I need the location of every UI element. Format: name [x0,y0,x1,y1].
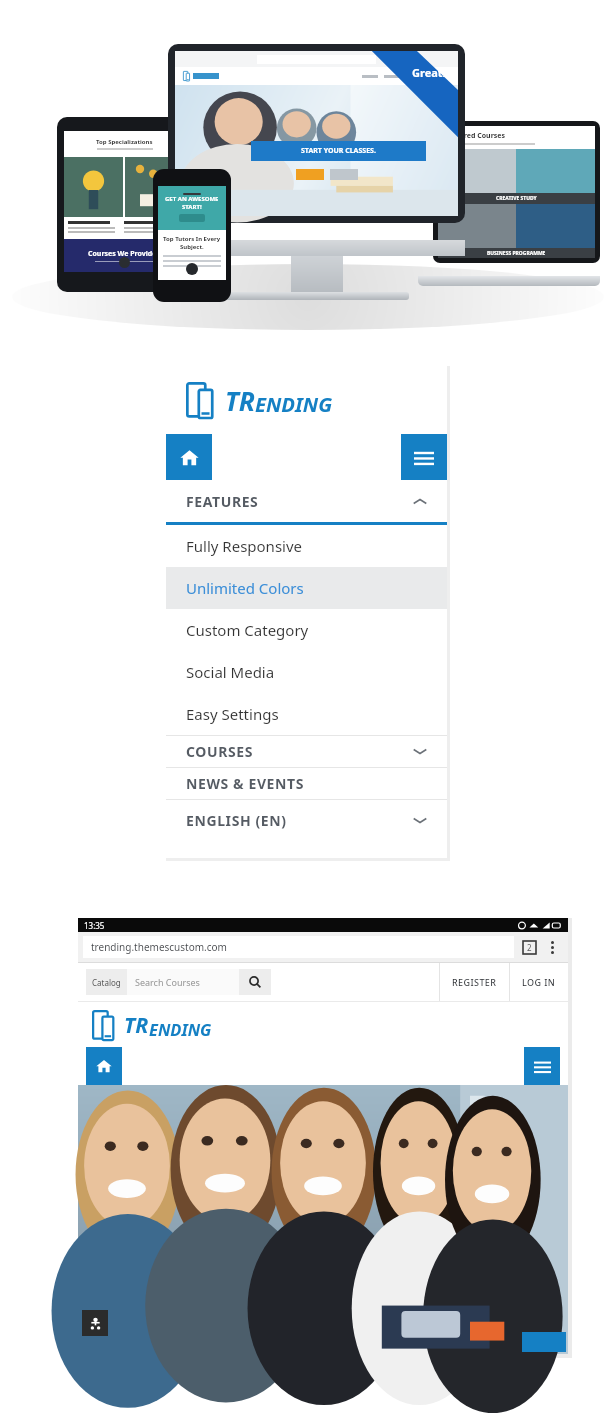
staticText: Custom Category [186,620,309,640]
staticText: trending.themescustom.com [91,940,227,954]
staticText: Courses We Provided [88,249,161,259]
staticText: Catalog [92,977,121,988]
staticText: CREATIVE STUDY [496,195,537,202]
staticText: 13:35 [84,920,105,931]
button[interactable]: Unlimited Colors [166,567,447,609]
button[interactable]: Accessibility [82,1310,108,1336]
staticText: Easy Settings [186,704,279,724]
staticText: REGISTER [452,976,497,988]
button[interactable]: LOG IN [510,963,568,1001]
staticText: Top Tutors In Every [163,235,221,243]
staticText: NEWS & EVENTS [186,774,305,793]
staticText: Great! [412,65,446,80]
staticText: Featured Courses [444,131,505,141]
button[interactable]: Menu [401,434,447,480]
staticText: 2 [527,942,532,953]
button[interactable]: NEWS & EVENTS [166,768,447,799]
staticText: COURSES [186,742,254,761]
staticText: TR [225,383,255,418]
staticText: ENDING [255,390,333,418]
button[interactable]: Menu [524,1047,560,1085]
staticText: TR [124,1011,149,1040]
staticText: BUSINESS PROGRAMME [487,250,546,257]
button[interactable]: trending.themescustom.com [83,936,514,958]
staticText: Unlimited Colors [186,578,304,598]
button[interactable]: Home [166,434,212,480]
button[interactable]: Home [86,1047,122,1085]
staticText: Subject. [180,243,204,251]
staticText: Search Courses [135,976,200,988]
button[interactable]: ENGLISH (EN) [166,800,447,840]
staticText: LOG IN [522,976,556,988]
button[interactable]: REGISTER [440,963,509,1001]
button[interactable]: Catalog [86,969,271,995]
button[interactable]: FEATURES [166,480,447,522]
staticText: START! [182,203,202,211]
staticText: Top Specializations [96,138,153,146]
button[interactable]: More options [545,940,559,954]
button[interactable]: Easy Settings [166,693,447,735]
button[interactable]: Fully Responsive [166,525,447,567]
button[interactable]: Social Media [166,651,447,693]
staticText: ENDING [149,1018,212,1040]
staticText: GET AN AWESOME [165,195,219,203]
staticText: Fully Responsive [186,536,303,556]
staticText: FEATURES [186,492,259,511]
staticText: ENGLISH (EN) [186,811,287,830]
button[interactable]: Custom Category [166,609,447,651]
staticText: START YOUR CLASSES. [301,146,376,156]
button[interactable]: COURSES [166,736,447,767]
button[interactable]: Tabs [522,940,537,955]
staticText: Social Media [186,662,275,682]
